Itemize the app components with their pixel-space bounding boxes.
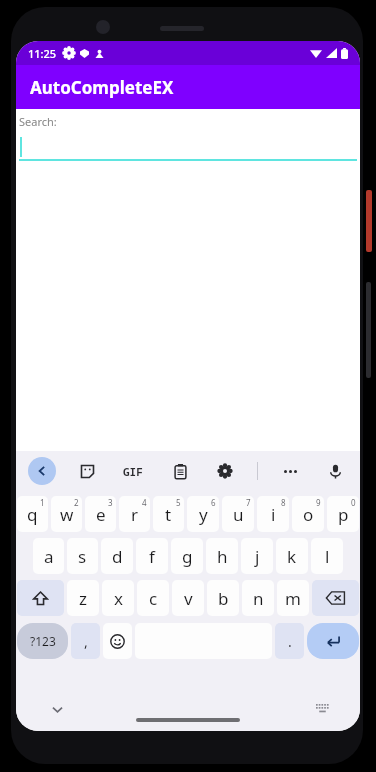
- button[interactable]: Emoji: [103, 623, 132, 659]
- staticText: d: [112, 545, 123, 568]
- button[interactable]: n: [242, 580, 274, 616]
- staticText: w: [60, 503, 74, 526]
- button[interactable]: Stickers: [74, 458, 100, 484]
- staticText: f: [149, 545, 155, 568]
- staticText: h: [217, 545, 228, 568]
- staticText: 9: [316, 497, 321, 508]
- staticText: ?123: [30, 633, 56, 649]
- button[interactable]: u: [222, 496, 254, 532]
- button[interactable]: ?123: [17, 623, 68, 659]
- button[interactable]: [19, 133, 357, 161]
- staticText: Search:: [19, 114, 57, 129]
- button[interactable]: k: [276, 538, 308, 574]
- button[interactable]: GIF: [118, 456, 148, 486]
- staticText: u: [233, 503, 244, 526]
- button[interactable]: b: [207, 580, 239, 616]
- staticText: 7: [246, 497, 251, 508]
- button[interactable]: f: [136, 538, 168, 574]
- staticText: AutoCompleteEX: [30, 76, 174, 99]
- staticText: g: [182, 545, 193, 568]
- button[interactable]: j: [241, 538, 273, 574]
- button[interactable]: r: [119, 496, 150, 532]
- staticText: ,: [84, 632, 88, 651]
- button[interactable]: Hide keyboard: [44, 696, 70, 722]
- button[interactable]: m: [277, 580, 309, 616]
- button[interactable]: v: [172, 580, 204, 616]
- staticText: 6: [211, 497, 216, 508]
- button[interactable]: w: [51, 496, 82, 532]
- staticText: z: [79, 587, 87, 610]
- staticText: 5: [176, 497, 181, 508]
- button[interactable]: y: [187, 496, 219, 532]
- staticText: e: [96, 503, 106, 526]
- button[interactable]: e: [85, 496, 116, 532]
- staticText: b: [218, 587, 229, 610]
- button[interactable]: AutoCompleteEX: [16, 65, 360, 109]
- staticText: o: [303, 503, 314, 526]
- staticText: 11:25: [28, 46, 57, 61]
- button[interactable]: l: [311, 538, 343, 574]
- staticText: r: [131, 503, 139, 526]
- staticText: y: [199, 503, 208, 526]
- button[interactable]: Settings: [212, 458, 238, 484]
- staticText: p: [338, 503, 349, 526]
- staticText: 1: [40, 497, 45, 508]
- staticText: .: [288, 632, 292, 651]
- staticText: m: [285, 587, 301, 610]
- staticText: v: [184, 587, 193, 610]
- staticText: l: [325, 545, 330, 568]
- button[interactable]: Voice input: [322, 458, 348, 484]
- staticText: 3: [108, 497, 113, 508]
- button[interactable]: d: [101, 538, 133, 574]
- staticText: a: [44, 545, 54, 568]
- staticText: 0: [351, 497, 356, 508]
- staticText: GIF: [123, 464, 143, 479]
- button[interactable]: c: [137, 580, 169, 616]
- staticText: n: [253, 587, 264, 610]
- staticText: q: [27, 503, 38, 526]
- staticText: 2: [74, 497, 79, 508]
- button[interactable]: .: [275, 623, 304, 659]
- button[interactable]: o: [292, 496, 324, 532]
- button[interactable]: z: [67, 580, 99, 616]
- button[interactable]: h: [206, 538, 238, 574]
- button[interactable]: ,: [71, 623, 100, 659]
- button[interactable]: Switch keyboard: [310, 697, 334, 721]
- button[interactable]: g: [171, 538, 203, 574]
- button[interactable]: Shift: [17, 580, 64, 616]
- staticText: i: [271, 503, 276, 526]
- button[interactable]: s: [67, 538, 98, 574]
- staticText: s: [78, 545, 87, 568]
- button[interactable]: i: [257, 496, 289, 532]
- staticText: 8: [281, 497, 286, 508]
- button[interactable]: t: [153, 496, 184, 532]
- staticText: c: [149, 587, 158, 610]
- button[interactable]: Backspace: [312, 580, 359, 616]
- button[interactable]: a: [33, 538, 64, 574]
- button[interactable]: Back: [28, 457, 56, 485]
- button[interactable]: p: [327, 496, 359, 532]
- button[interactable]: Clipboard: [167, 458, 193, 484]
- button[interactable]: q: [17, 496, 48, 532]
- staticText: t: [165, 503, 172, 526]
- button[interactable]: Enter: [307, 623, 359, 659]
- staticText: x: [114, 587, 123, 610]
- staticText: k: [287, 545, 297, 568]
- staticText: j: [255, 545, 260, 568]
- button[interactable]: More: [277, 458, 303, 484]
- staticText: 4: [142, 497, 147, 508]
- button[interactable]: x: [102, 580, 134, 616]
